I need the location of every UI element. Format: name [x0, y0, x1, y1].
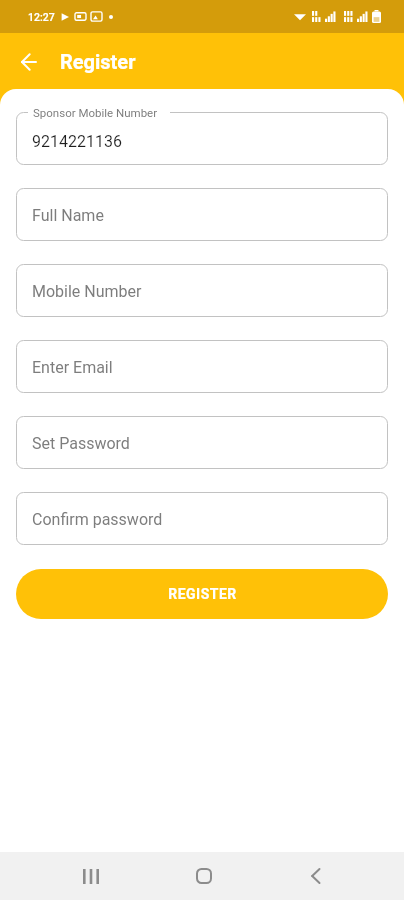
staticText: Full Name: [32, 206, 104, 225]
staticText: Register: [60, 50, 136, 73]
staticText: Sponsor Mobile Number: [33, 106, 158, 119]
button[interactable]: Enter Email: [16, 340, 388, 393]
staticText: REGISTER: [168, 586, 237, 602]
staticText: Mobile Number: [32, 282, 142, 301]
button[interactable]: Home: [180, 852, 228, 900]
staticText: Set Password: [32, 434, 130, 453]
button[interactable]: Mobile Number: [16, 264, 388, 317]
button[interactable]: Confirm password: [16, 492, 388, 545]
button[interactable]: Back: [12, 44, 46, 78]
button[interactable]: REGISTER: [16, 569, 388, 619]
staticText: Enter Email: [32, 358, 113, 377]
button[interactable]: Sponsor Mobile Number: [16, 112, 388, 165]
button[interactable]: Back: [292, 852, 340, 900]
staticText: 12:27: [28, 11, 55, 23]
button[interactable]: Full Name: [16, 188, 388, 241]
button[interactable]: Recent apps: [67, 852, 115, 900]
button[interactable]: Set Password: [16, 416, 388, 469]
staticText: 9214221136: [32, 132, 122, 151]
staticText: Confirm password: [32, 510, 163, 529]
